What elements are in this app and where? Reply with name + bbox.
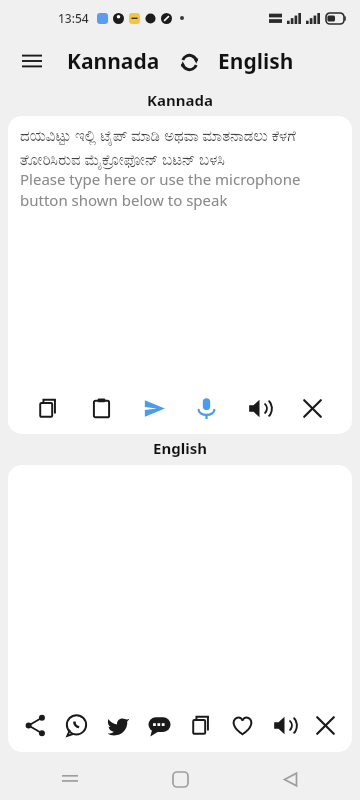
button[interactable]: Speak — [265, 706, 303, 744]
button[interactable]: Speak — [240, 389, 278, 427]
staticText: ದಯವಿಟ್ಟು ಇಲ್ಲಿ ಟೈಪ್ ಮಾಡಿ ಅಥವಾ ಮಾತನಾಡಲು ಕ… — [20, 125, 342, 169]
button[interactable]: Clear — [306, 706, 344, 744]
button[interactable]: WhatsApp — [57, 706, 95, 744]
button[interactable]: English — [214, 43, 298, 80]
button[interactable]: Microphone — [187, 389, 225, 427]
button[interactable]: Kannada — [63, 43, 164, 80]
staticText: English — [153, 438, 207, 458]
button[interactable]: Paste — [82, 389, 120, 427]
button[interactable]: Home — [160, 759, 200, 799]
staticText: Kannada — [147, 90, 213, 110]
button[interactable]: Menu — [10, 39, 54, 83]
staticText: English — [218, 47, 294, 76]
staticText: Please type here or use the microphone b… — [20, 169, 342, 211]
button[interactable]: Copy — [29, 389, 67, 427]
button[interactable]: Translate — [135, 389, 173, 427]
button[interactable]: Recents — [50, 759, 90, 799]
staticText: Kannada — [67, 47, 160, 76]
button[interactable]: ದಯವಿಟ್ಟು ಇಲ್ಲಿ ಟೈಪ್ ಮಾಡಿ ಅಥವಾ ಮಾತನಾಡಲು ಕ… — [8, 116, 352, 382]
button[interactable]: Twitter — [99, 706, 137, 744]
button[interactable]: Swap languages — [174, 47, 204, 77]
staticText: 13:54 — [58, 10, 89, 26]
button[interactable]: SMS — [140, 706, 178, 744]
button[interactable]: Copy — [182, 706, 220, 744]
button[interactable]: Back — [270, 759, 310, 799]
button[interactable]: Favorite — [223, 706, 261, 744]
button[interactable]: Clear — [293, 389, 331, 427]
button[interactable]: Share — [16, 706, 54, 744]
